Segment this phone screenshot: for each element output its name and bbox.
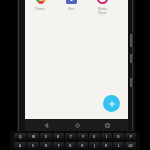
staticText: W (32, 135, 35, 139)
staticText: Media (98, 7, 107, 11)
button[interactable]: Media (90, 0, 114, 15)
staticText: G (69, 144, 72, 148)
staticText: A (19, 144, 22, 148)
staticText: E (45, 135, 47, 139)
staticText: ⌫ (128, 144, 133, 148)
staticText: U (93, 135, 96, 139)
button[interactable]: ⌫ (125, 142, 136, 149)
staticText: K (105, 144, 108, 148)
button[interactable]: Q (14, 133, 26, 140)
button[interactable]: Home (68, 119, 86, 131)
staticText: Files (68, 7, 75, 11)
button[interactable]: F (53, 142, 64, 149)
button[interactable]: K (101, 142, 112, 149)
staticText: Q (19, 135, 22, 139)
button[interactable]: P (125, 133, 136, 140)
button[interactable]: J (89, 142, 100, 149)
staticText: L (118, 144, 120, 148)
staticText: S (32, 144, 34, 148)
button[interactable]: Recents (98, 119, 116, 131)
button[interactable]: G (65, 142, 76, 149)
button[interactable]: R (53, 133, 64, 140)
staticText: I (106, 135, 108, 139)
button[interactable]: E (40, 133, 52, 140)
staticText: J (94, 144, 95, 148)
button[interactable]: U (89, 133, 100, 140)
button[interactable]: Photos (28, 0, 52, 11)
staticText: P (130, 135, 132, 139)
button[interactable]: Add (103, 95, 120, 112)
button[interactable]: O (113, 133, 124, 140)
button[interactable]: Files (59, 0, 83, 11)
staticText: D (45, 144, 48, 148)
button[interactable]: L (113, 142, 124, 149)
staticText: Y (82, 135, 84, 139)
button[interactable]: D (40, 142, 52, 149)
staticText: R (57, 135, 60, 139)
button[interactable]: W (27, 133, 39, 140)
button[interactable]: Back (37, 119, 55, 131)
staticText: Player (98, 11, 107, 15)
staticText: T (70, 135, 72, 139)
button[interactable]: H (77, 142, 88, 149)
button[interactable]: T (65, 133, 76, 140)
button[interactable]: S (27, 142, 39, 149)
staticText: O (117, 135, 120, 139)
button[interactable]: A (14, 142, 26, 149)
staticText: F (58, 144, 60, 148)
staticText: Photos (35, 7, 45, 11)
button[interactable]: I (101, 133, 112, 140)
button[interactable]: Y (77, 133, 88, 140)
staticText: H (81, 144, 84, 148)
